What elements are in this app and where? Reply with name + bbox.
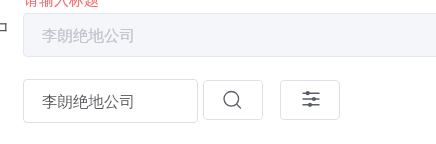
staticText: 请输入标题 [24, 0, 99, 10]
staticText: 李朗绝地公司 [42, 26, 135, 46]
button[interactable]: Search [203, 80, 263, 120]
button[interactable]: 李朗绝地公司 [23, 13, 436, 57]
button[interactable]: 李朗绝地公司 [23, 79, 198, 123]
button[interactable]: Filter [280, 80, 340, 120]
staticText: 李朗绝地公司 [42, 92, 135, 112]
